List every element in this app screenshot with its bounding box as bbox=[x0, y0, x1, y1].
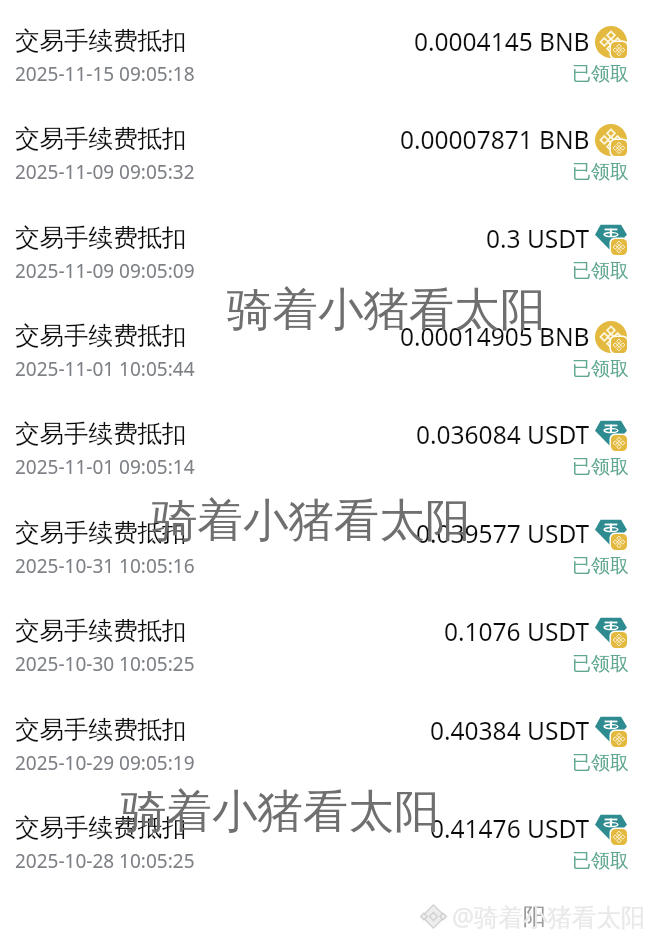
button[interactable]: 交易手续费抵扣 bbox=[0, 603, 652, 701]
staticText: 0.00014905 BNB bbox=[400, 320, 590, 353]
other: BNB bbox=[595, 124, 629, 158]
staticText: 已领取 bbox=[572, 259, 629, 283]
staticText: 0.41476 USDT bbox=[430, 812, 590, 845]
other: BNB bbox=[595, 26, 629, 60]
staticText: 阳 bbox=[523, 902, 546, 931]
staticText: 骑着小猪看太阳 bbox=[121, 783, 440, 840]
staticText: 骑着小猪看太阳 bbox=[227, 281, 546, 338]
staticText: 已领取 bbox=[572, 554, 629, 578]
staticText: 已领取 bbox=[572, 160, 629, 184]
staticText: 交易手续费抵扣 bbox=[15, 615, 187, 646]
staticText: 交易手续费抵扣 bbox=[15, 123, 187, 154]
other: USDT bbox=[595, 223, 629, 257]
staticText: 2025-11-01 09:05:14 bbox=[15, 454, 195, 480]
staticText: 已领取 bbox=[572, 751, 629, 775]
staticText: 交易手续费抵扣 bbox=[15, 418, 187, 449]
staticText: 2025-10-28 10:05:25 bbox=[15, 848, 195, 874]
other: USDT bbox=[595, 518, 629, 552]
staticText: 已领取 bbox=[572, 357, 629, 381]
staticText: 0.039577 USDT bbox=[416, 517, 590, 550]
staticText: 2025-10-29 09:05:19 bbox=[15, 750, 195, 776]
staticText: 骑着小猪看太阳 bbox=[152, 492, 471, 549]
staticText: 交易手续费抵扣 bbox=[15, 222, 187, 253]
staticText: 0.00007871 BNB bbox=[400, 123, 590, 156]
staticText: 交易手续费抵扣 bbox=[15, 812, 187, 843]
button[interactable]: 交易手续费抵扣 bbox=[0, 406, 652, 504]
button[interactable]: 交易手续费抵扣 bbox=[0, 308, 652, 406]
staticText: 交易手续费抵扣 bbox=[15, 25, 187, 56]
staticText: 2025-10-30 10:05:25 bbox=[15, 651, 195, 677]
button[interactable]: 交易手续费抵扣 bbox=[0, 210, 652, 308]
button[interactable]: 交易手续费抵扣 bbox=[0, 111, 652, 209]
staticText: 0.036084 USDT bbox=[416, 418, 590, 451]
staticText: 2025-11-09 09:05:09 bbox=[15, 258, 195, 284]
staticText: 已领取 bbox=[572, 849, 629, 873]
button[interactable]: 交易手续费抵扣 bbox=[0, 702, 652, 800]
staticText: 交易手续费抵扣 bbox=[15, 320, 187, 351]
staticText: 交易手续费抵扣 bbox=[15, 714, 187, 745]
staticText: 0.0004145 BNB bbox=[414, 25, 590, 58]
staticText: 0.3 USDT bbox=[486, 222, 590, 255]
staticText: 交易手续费抵扣 bbox=[15, 517, 187, 548]
staticText: 已领取 bbox=[572, 652, 629, 676]
other: USDT bbox=[595, 419, 629, 453]
staticText: 2025-10-31 10:05:16 bbox=[15, 553, 195, 579]
button[interactable]: 交易手续费抵扣 bbox=[0, 800, 652, 898]
staticText: 已领取 bbox=[572, 455, 629, 479]
other: USDT bbox=[595, 616, 629, 650]
staticText: 0.1076 USDT bbox=[444, 615, 590, 648]
button[interactable]: 交易手续费抵扣 bbox=[0, 13, 652, 111]
other: USDT bbox=[595, 715, 629, 749]
staticText: 0.40384 USDT bbox=[430, 714, 590, 747]
button[interactable]: 交易手续费抵扣 bbox=[0, 505, 652, 603]
staticText: 2025-11-01 10:05:44 bbox=[15, 356, 195, 382]
staticText: 2025-11-15 09:05:18 bbox=[15, 61, 195, 87]
staticText: @骑着小猪看太阳 bbox=[452, 900, 646, 933]
other: BNB bbox=[595, 321, 629, 355]
staticText: 已领取 bbox=[572, 62, 629, 86]
staticText: 2025-11-09 09:05:32 bbox=[15, 159, 195, 185]
other: USDT bbox=[595, 813, 629, 847]
